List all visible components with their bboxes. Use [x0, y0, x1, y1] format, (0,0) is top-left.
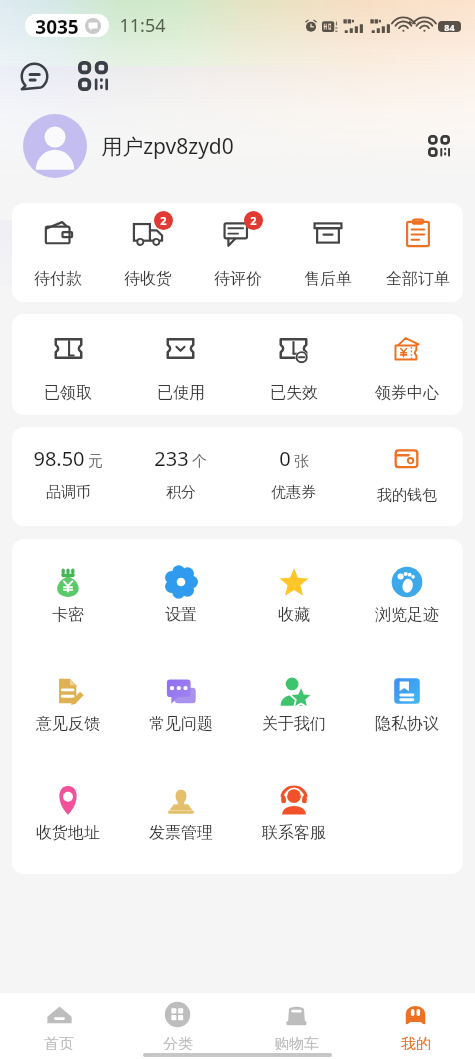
button[interactable]: 98.50: [12, 445, 124, 502]
button[interactable]: 2: [193, 217, 283, 289]
staticText: 收货地址: [36, 823, 100, 843]
staticText: 11:54: [119, 13, 166, 38]
staticText: 张: [294, 452, 309, 471]
staticText: 84: [444, 21, 455, 32]
staticText: 联系客服: [262, 823, 326, 843]
button[interactable]: 卡密: [12, 566, 124, 625]
button[interactable]: 已失效: [237, 334, 350, 403]
button[interactable]: 购物车: [237, 993, 356, 1050]
staticText: 品调币: [46, 483, 91, 502]
button[interactable]: 已使用: [124, 334, 237, 403]
staticText: 个: [192, 452, 207, 471]
staticText: 待收货: [124, 269, 172, 289]
staticText: 用户zpv8zyd0: [101, 132, 234, 161]
staticText: 我的: [401, 1035, 431, 1050]
staticText: 购物车: [274, 1035, 319, 1050]
staticText: 售后单: [304, 269, 352, 289]
staticText: 98.50: [33, 445, 85, 472]
button[interactable]: 已领取: [12, 334, 124, 403]
staticText: 全部订单: [386, 269, 450, 289]
staticText: 233: [154, 445, 189, 472]
button[interactable]: 收藏: [237, 566, 350, 625]
button[interactable]: 我的: [356, 993, 475, 1050]
staticText: 关于我们: [262, 714, 326, 734]
button[interactable]: 收货地址: [12, 784, 124, 843]
button[interactable]: 233: [124, 445, 237, 502]
staticText: 卡密: [52, 605, 84, 625]
staticText: 优惠券: [271, 483, 316, 502]
staticText: 分类: [163, 1035, 193, 1050]
button[interactable]: 关于我们: [237, 675, 350, 734]
button[interactable]: 全部订单: [373, 217, 463, 289]
button[interactable]: 发票管理: [124, 784, 237, 843]
staticText: 浏览足迹: [375, 605, 439, 625]
staticText: 领券中心: [375, 383, 439, 403]
staticText: 隐私协议: [375, 714, 439, 734]
button[interactable]: 用户zpv8zyd0: [23, 101, 459, 191]
staticText: 待付款: [34, 269, 82, 289]
button[interactable]: 设置: [124, 566, 237, 625]
button[interactable]: 隐私协议: [350, 675, 463, 734]
button[interactable]: My QR code: [419, 126, 459, 166]
button[interactable]: 我的钱包: [350, 445, 463, 505]
button[interactable]: 联系客服: [237, 784, 350, 843]
staticText: 我的钱包: [377, 486, 437, 505]
button[interactable]: 领券中心: [350, 334, 463, 403]
staticText: 已使用: [157, 383, 205, 403]
button[interactable]: 常见问题: [124, 675, 237, 734]
staticText: 2: [160, 213, 167, 228]
button[interactable]: 浏览足迹: [350, 566, 463, 625]
button[interactable]: 0: [237, 445, 350, 502]
button[interactable]: 待付款: [12, 217, 103, 289]
staticText: 常见问题: [149, 714, 213, 734]
staticText: 设置: [165, 605, 197, 625]
button[interactable]: 2: [103, 217, 193, 289]
staticText: 0: [279, 445, 291, 472]
staticText: 首页: [44, 1035, 74, 1050]
button[interactable]: Scan QR code: [73, 56, 113, 96]
button[interactable]: 售后单: [283, 217, 373, 289]
staticText: 收藏: [278, 605, 310, 625]
staticText: 待评价: [214, 269, 262, 289]
staticText: 意见反馈: [36, 714, 100, 734]
button[interactable]: 首页: [0, 993, 118, 1050]
button[interactable]: 分类: [118, 993, 237, 1050]
staticText: 2: [250, 213, 257, 228]
button[interactable]: 意见反馈: [12, 675, 124, 734]
staticText: 元: [88, 452, 103, 471]
staticText: 已领取: [44, 383, 92, 403]
staticText: 发票管理: [149, 823, 213, 843]
staticText: 已失效: [270, 383, 318, 403]
button[interactable]: Messages: [14, 56, 54, 96]
staticText: 积分: [166, 483, 196, 502]
staticText: 3035: [35, 14, 79, 37]
